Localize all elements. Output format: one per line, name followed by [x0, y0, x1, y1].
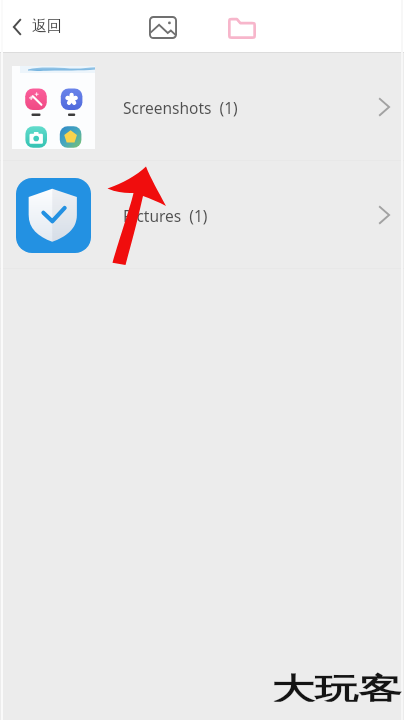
button[interactable]: Folders — [222, 7, 262, 47]
button[interactable]: 返回 — [0, 0, 72, 53]
staticText: Pictures (1) — [123, 205, 208, 226]
button[interactable]: Pictures (1) — [0, 161, 404, 269]
button[interactable]: Screenshots (1) — [0, 53, 404, 161]
staticText: Screenshots (1) — [123, 97, 238, 118]
staticText: 返回 — [32, 17, 62, 36]
button[interactable]: Photos — [143, 7, 183, 47]
staticText: 大玩客 — [271, 670, 402, 702]
